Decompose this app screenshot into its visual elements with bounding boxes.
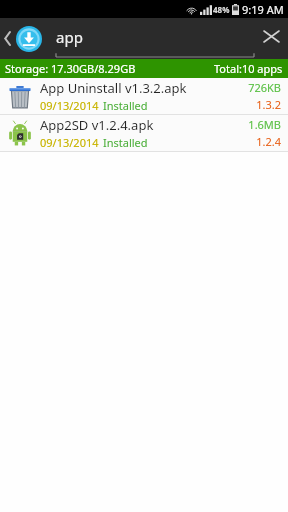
- staticText: app: [56, 27, 83, 47]
- staticText: 09/13/2014: [40, 135, 99, 150]
- staticText: 1.2.4: [256, 134, 281, 149]
- staticText: Total:10 apps: [214, 61, 283, 76]
- staticText: 1.3.2: [256, 97, 281, 112]
- staticText: 48%: [213, 4, 230, 15]
- staticText: Installed: [103, 135, 148, 150]
- staticText: 9:19 AM: [242, 2, 284, 17]
- staticText: App2SD v1.2.4.apk: [40, 116, 154, 134]
- staticText: 726KB: [248, 80, 281, 95]
- staticText: 09/13/2014: [40, 98, 99, 113]
- button[interactable]: App2SD v1.2.4.apk: [0, 115, 288, 151]
- staticText: Storage: 17.30GB/8.29GB: [5, 61, 136, 76]
- staticText: 1.6MB: [248, 117, 281, 132]
- button[interactable]: Clear search: [254, 18, 288, 59]
- button[interactable]: App Uninstall v1.3.2.apk: [0, 78, 288, 114]
- button[interactable]: App Uninstall: [14, 24, 44, 54]
- button[interactable]: Back: [0, 18, 14, 59]
- button[interactable]: app: [56, 18, 254, 59]
- staticText: App Uninstall v1.3.2.apk: [40, 79, 187, 97]
- staticText: Installed: [103, 98, 148, 113]
